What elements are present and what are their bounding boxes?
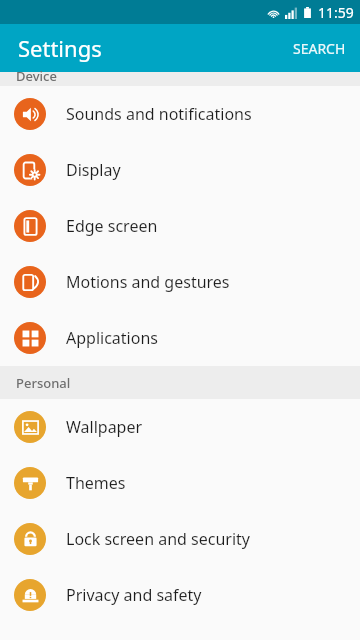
staticText: Wallpaper	[66, 416, 143, 438]
staticText: Device	[16, 67, 57, 81]
button[interactable]: Motions and gestures	[0, 254, 360, 310]
staticText: Display	[66, 159, 121, 181]
staticText: Applications	[66, 327, 158, 349]
button[interactable]: Lock screen and security	[0, 511, 360, 567]
staticText: Sounds and notifications	[66, 103, 252, 125]
button[interactable]: Display	[0, 142, 360, 198]
staticText: SEARCH	[293, 39, 346, 58]
button[interactable]: Privacy and safety	[0, 567, 360, 623]
button[interactable]: Applications	[0, 310, 360, 366]
staticText: Settings	[18, 33, 102, 63]
button[interactable]: Wallpaper	[0, 399, 360, 455]
button[interactable]: Themes	[0, 455, 360, 511]
staticText: Themes	[66, 472, 126, 494]
staticText: Lock screen and security	[66, 528, 250, 550]
button[interactable]: Sounds and notifications	[0, 86, 360, 142]
button[interactable]: SEARCH	[279, 27, 360, 70]
staticText: Motions and gestures	[66, 271, 230, 293]
staticText: 11:59	[318, 3, 354, 22]
staticText: Edge screen	[66, 215, 158, 237]
staticText: Personal	[16, 374, 71, 392]
staticText: Privacy and safety	[66, 584, 202, 606]
button[interactable]: Edge screen	[0, 198, 360, 254]
